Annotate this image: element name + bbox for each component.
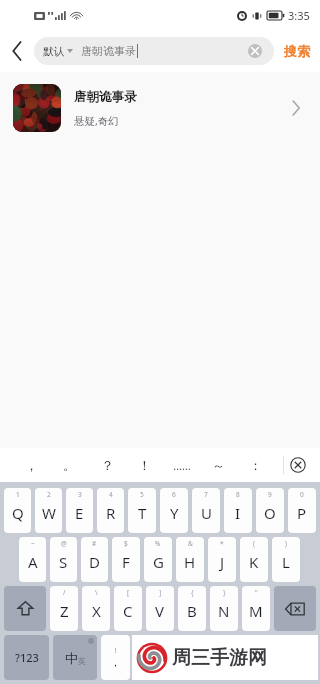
- button[interactable]: 7: [192, 488, 220, 533]
- staticText: G: [153, 552, 164, 572]
- button[interactable]: &: [176, 537, 204, 582]
- staticText: *: [220, 539, 224, 548]
- button[interactable]: ": [242, 586, 270, 631]
- button[interactable]: /: [50, 586, 78, 631]
- staticText: D: [89, 552, 100, 572]
- button[interactable]: ……: [163, 448, 200, 482]
- staticText: K: [249, 552, 259, 572]
- button[interactable]: (: [240, 537, 268, 582]
- staticText: 。: [63, 457, 76, 473]
- staticText: 2: [47, 490, 51, 499]
- staticText: I: [235, 503, 241, 523]
- staticText: 0: [300, 490, 304, 499]
- button[interactable]: 默认: [34, 37, 274, 65]
- staticText: 悬疑,奇幻: [74, 114, 119, 128]
- button[interactable]: 6: [160, 488, 188, 533]
- button[interactable]: ): [272, 537, 300, 582]
- button[interactable]: ？: [88, 448, 126, 482]
- staticText: Z: [60, 601, 69, 621]
- staticText: 9: [268, 490, 272, 499]
- button[interactable]: {: [178, 586, 206, 631]
- staticText: ~: [31, 539, 35, 548]
- button[interactable]: ！: [101, 635, 130, 680]
- button[interactable]: ?123: [4, 635, 49, 680]
- button[interactable]: 唐朝诡事录: [0, 72, 320, 144]
- staticText: 英: [78, 656, 86, 666]
- staticText: 3:35: [288, 8, 310, 23]
- staticText: ": [255, 588, 258, 597]
- button[interactable]: ~: [19, 537, 46, 582]
- staticText: P: [297, 503, 307, 523]
- staticText: 1: [16, 490, 20, 499]
- staticText: \: [95, 588, 98, 597]
- staticText: 唐朝诡事录: [74, 89, 137, 105]
- button[interactable]: Back: [0, 30, 34, 72]
- button[interactable]: [: [114, 586, 142, 631]
- staticText: @: [61, 539, 67, 548]
- staticText: {: [191, 588, 194, 597]
- button[interactable]: %: [144, 537, 172, 582]
- button[interactable]: 1: [4, 488, 31, 533]
- staticText: M: [249, 601, 263, 621]
- button[interactable]: Switch Chinese English: [53, 635, 97, 680]
- button[interactable]: ：: [237, 448, 274, 482]
- button[interactable]: *: [208, 537, 236, 582]
- button[interactable]: ]: [146, 586, 174, 631]
- staticText: 周三手游网: [172, 646, 267, 670]
- button[interactable]: 5: [128, 488, 156, 533]
- staticText: F: [122, 552, 130, 572]
- button[interactable]: 0: [288, 488, 316, 533]
- staticText: #: [92, 539, 97, 548]
- button[interactable]: \: [82, 586, 110, 631]
- staticText: O: [264, 503, 276, 523]
- button[interactable]: Close keyboard: [285, 452, 311, 478]
- staticText: E: [75, 503, 84, 523]
- staticText: 唐朝诡事录: [81, 44, 136, 58]
- button[interactable]: 4: [97, 488, 124, 533]
- button[interactable]: 搜索: [274, 30, 320, 72]
- staticText: 默认: [43, 45, 64, 58]
- staticText: X: [92, 601, 101, 621]
- staticText: 4: [109, 490, 113, 499]
- staticText: %: [155, 539, 161, 548]
- button[interactable]: ，: [12, 448, 50, 482]
- staticText: [: [127, 588, 130, 597]
- staticText: 7: [204, 490, 208, 499]
- button[interactable]: }: [210, 586, 238, 631]
- button[interactable]: 。: [50, 448, 88, 482]
- staticText: ，: [110, 655, 121, 669]
- button[interactable]: 2: [35, 488, 62, 533]
- staticText: ？: [101, 457, 114, 473]
- staticText: ]: [159, 588, 162, 597]
- staticText: S: [59, 552, 68, 572]
- staticText: R: [106, 503, 116, 523]
- staticText: T: [138, 503, 147, 523]
- staticText: W: [42, 503, 56, 523]
- staticText: 5: [140, 490, 144, 499]
- button[interactable]: 8: [224, 488, 252, 533]
- button[interactable]: #: [81, 537, 108, 582]
- staticText: ～: [212, 457, 225, 473]
- staticText: (: [253, 539, 255, 548]
- staticText: 中: [65, 650, 78, 666]
- button[interactable]: Shift: [4, 586, 46, 631]
- button[interactable]: 9: [256, 488, 284, 533]
- staticText: Q: [12, 503, 24, 523]
- staticText: ！: [112, 646, 119, 655]
- staticText: ！: [138, 457, 151, 473]
- staticText: U: [201, 503, 212, 523]
- button[interactable]: ！: [126, 448, 163, 482]
- staticText: 搜索: [284, 43, 310, 59]
- button[interactable]: ～: [200, 448, 237, 482]
- button[interactable]: Clear: [245, 41, 265, 61]
- button[interactable]: $: [112, 537, 140, 582]
- staticText: ：: [249, 457, 262, 473]
- button[interactable]: @: [50, 537, 77, 582]
- button[interactable]: Backspace: [274, 586, 316, 631]
- staticText: 6: [172, 490, 176, 499]
- staticText: Y: [170, 503, 179, 523]
- button[interactable]: 3: [66, 488, 93, 533]
- staticText: A: [28, 552, 38, 572]
- staticText: N: [218, 601, 230, 621]
- staticText: ，: [25, 457, 38, 473]
